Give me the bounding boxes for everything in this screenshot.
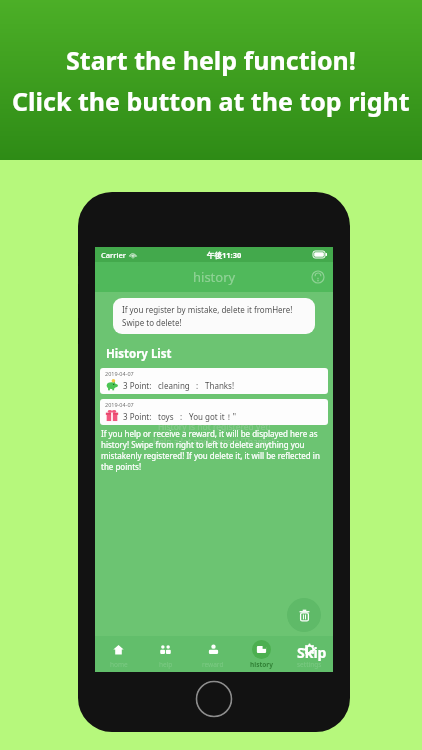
staticText: 午後11:30 [207, 250, 242, 260]
button[interactable]: 2019-04-07 [100, 368, 328, 394]
button[interactable]: Help [311, 270, 325, 284]
staticText: 3 Point: [123, 411, 152, 422]
staticText: settings [297, 660, 322, 669]
staticText: reward [202, 660, 224, 669]
staticText: You got it！" [189, 411, 236, 422]
button[interactable]: Skip [297, 643, 327, 662]
staticText: If you register by mistake, delete it fr… [122, 304, 293, 315]
staticText: toys [158, 411, 174, 422]
staticText: : [196, 380, 199, 391]
staticText: History is not registered yet! [158, 421, 271, 433]
staticText: 2019-04-07 [105, 370, 134, 377]
staticText: cleaning [158, 380, 190, 391]
button[interactable]: 2019-04-07 [100, 399, 328, 425]
staticText: Help a lot and correct 'Thanks'! [153, 436, 276, 448]
staticText: 3 Point: [123, 380, 152, 391]
staticText: Swipe to delete! [122, 317, 182, 328]
button[interactable]: reward [189, 636, 237, 672]
staticText: Start the help function! [66, 43, 356, 77]
staticText: history [193, 268, 236, 286]
button[interactable]: help [142, 636, 189, 672]
staticText: History List [106, 346, 172, 362]
button[interactable]: history [237, 636, 285, 672]
staticText: : [180, 411, 183, 422]
staticText: home [110, 660, 128, 669]
staticText: Click the button at the top right [12, 84, 410, 118]
button[interactable]: home [95, 636, 142, 672]
staticText: help [159, 660, 173, 669]
button[interactable]: Delete [287, 598, 321, 632]
staticText: If you help or receive a reward, it will… [101, 428, 327, 472]
staticText: Thanks! [205, 380, 235, 391]
staticText: Carrier [101, 250, 126, 260]
staticText: Skip [297, 643, 327, 662]
button[interactable]: settings [285, 636, 333, 672]
staticText: history [250, 660, 273, 669]
staticText: 2019-04-07 [105, 401, 134, 408]
